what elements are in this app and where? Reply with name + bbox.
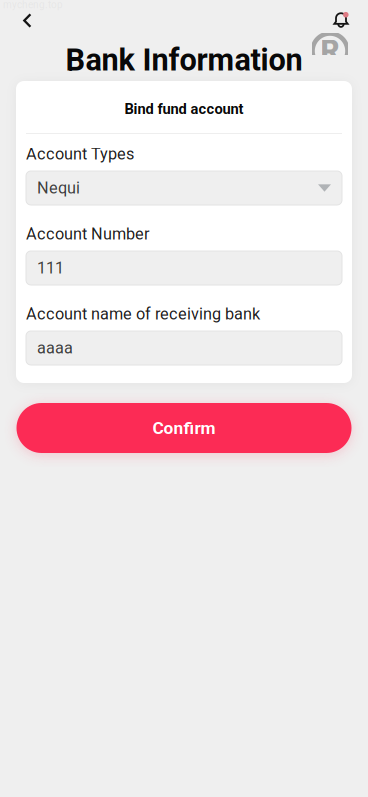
button[interactable]: Confirm <box>16 403 351 453</box>
staticText: R <box>320 33 339 68</box>
staticText: Account name of receiving bank <box>26 304 260 324</box>
button[interactable]: Notifications <box>323 3 368 37</box>
button[interactable]: aaaa <box>26 331 342 365</box>
button[interactable]: 111 <box>26 251 342 285</box>
staticText: Nequi <box>37 178 80 198</box>
staticText: 111 <box>37 258 64 278</box>
staticText: Account Number <box>26 224 150 244</box>
staticText: Confirm <box>152 418 215 438</box>
staticText: Bind fund account <box>124 100 243 118</box>
staticText: aaaa <box>37 338 73 358</box>
staticText: Account Types <box>26 144 134 164</box>
button[interactable]: Back <box>0 3 43 38</box>
staticText: Bank Information <box>65 42 302 78</box>
button[interactable]: Nequi <box>26 171 342 205</box>
